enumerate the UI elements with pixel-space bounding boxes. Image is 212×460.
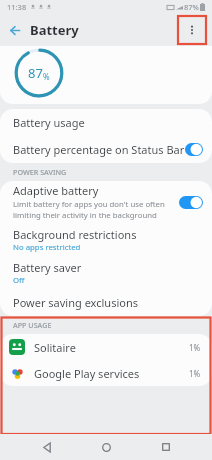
- staticText: 87: [28, 64, 43, 82]
- button[interactable]: Recents: [153, 434, 179, 460]
- staticText: Battery percentage on Status Bar: [13, 142, 185, 157]
- button[interactable]: Toggle: [179, 196, 203, 209]
- button[interactable]: Home: [93, 434, 119, 460]
- staticText: Battery usage: [13, 115, 85, 130]
- staticText: Limit battery for apps you don't use oft…: [13, 199, 175, 210]
- staticText: Google Play services: [34, 366, 140, 381]
- button[interactable]: Battery percentage on Status Bar: [0, 136, 212, 163]
- button[interactable]: Toggle: [185, 143, 203, 156]
- button[interactable]: Power saving exclusions: [0, 289, 212, 316]
- button[interactable]: Background restrictions: [0, 223, 212, 256]
- staticText: Solitaire: [34, 340, 76, 355]
- button[interactable]: Solitaire: [0, 334, 212, 360]
- staticText: Power saving exclusions: [13, 295, 138, 310]
- staticText: %: [43, 71, 50, 82]
- button[interactable]: More options: [177, 15, 207, 45]
- staticText: Background restrictions: [13, 227, 137, 242]
- button[interactable]: Adaptive battery: [0, 181, 212, 223]
- staticText: 87%: [184, 2, 199, 12]
- staticText: POWER SAVING: [13, 167, 67, 177]
- staticText: APP USAGE: [13, 320, 52, 330]
- staticText: Off: [13, 275, 25, 286]
- staticText: No apps restricted: [13, 242, 81, 253]
- staticText: Battery saver: [13, 260, 82, 275]
- staticText: Adaptive battery: [13, 183, 99, 198]
- staticText: 1%: [189, 342, 201, 353]
- staticText: Battery: [30, 21, 79, 39]
- button[interactable]: Back: [0, 15, 30, 45]
- button[interactable]: Google Play services: [0, 360, 212, 386]
- button[interactable]: Battery usage: [0, 109, 212, 136]
- staticText: limiting their activity in the backgroun…: [13, 210, 157, 221]
- staticText: 1%: [189, 368, 201, 379]
- button[interactable]: Battery saver: [0, 256, 212, 289]
- staticText: 11:38: [7, 2, 27, 12]
- button[interactable]: Back: [34, 434, 60, 460]
